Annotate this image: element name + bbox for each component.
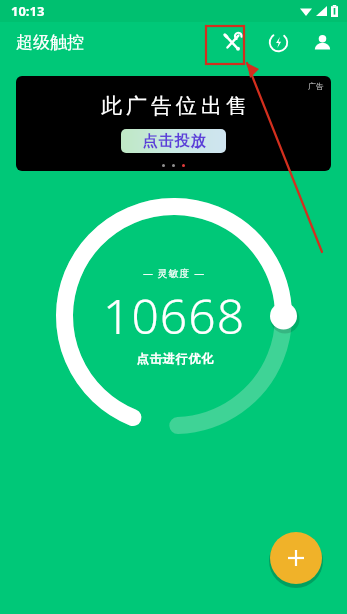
button[interactable]: Profile xyxy=(307,27,337,57)
staticText: 点击进行优化 xyxy=(136,351,214,366)
button[interactable]: 点击投放 xyxy=(121,129,226,153)
staticText: 10:13 xyxy=(11,2,45,20)
staticText: 10668 xyxy=(103,283,246,348)
button[interactable]: Boost xyxy=(263,27,293,57)
staticText: 广告 xyxy=(308,81,324,91)
button[interactable]: 广告 xyxy=(16,76,331,171)
staticText: 超级触控 xyxy=(16,32,84,53)
button[interactable]: — 灵敏度 — xyxy=(52,194,296,438)
button[interactable]: Tools xyxy=(215,25,249,59)
staticText: 此广告位出售 xyxy=(99,93,249,119)
button[interactable]: Add xyxy=(268,530,324,586)
staticText: — 灵敏度 — xyxy=(143,266,206,280)
staticText: 点击投放 xyxy=(142,132,206,151)
